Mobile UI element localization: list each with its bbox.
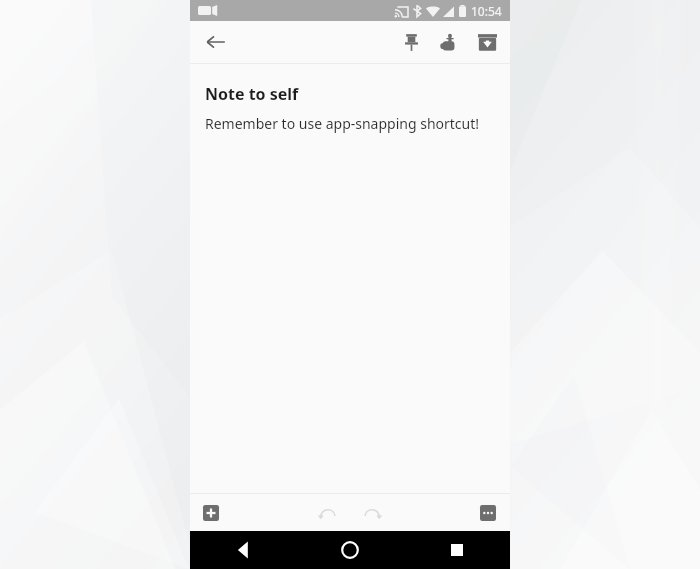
button[interactable]: Recents: [403, 531, 510, 569]
button[interactable]: Remind me: [430, 23, 468, 61]
staticText: Remember to use app-snapping shortcut!: [205, 114, 480, 133]
button[interactable]: Archive: [468, 23, 506, 61]
button[interactable]: More options: [471, 496, 505, 530]
button[interactable]: Back: [190, 531, 296, 569]
button[interactable]: Back: [196, 22, 236, 62]
button[interactable]: Home: [296, 531, 403, 569]
button[interactable]: Add: [194, 496, 228, 530]
staticText: 10:54: [471, 3, 502, 19]
button[interactable]: Redo: [354, 495, 390, 531]
staticText: Note to self: [205, 83, 299, 105]
button[interactable]: Pin: [392, 23, 430, 61]
button[interactable]: Undo: [310, 495, 346, 531]
